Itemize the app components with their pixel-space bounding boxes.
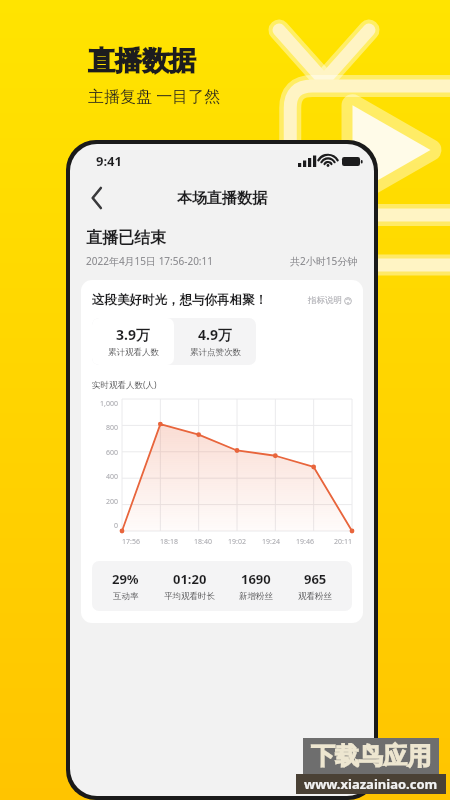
staticText: 9:41 bbox=[96, 152, 122, 170]
staticText: 600 bbox=[105, 448, 118, 458]
staticText: 01:20 bbox=[173, 570, 207, 588]
staticText: 新增粉丝 bbox=[239, 591, 273, 602]
staticText: 19:24 bbox=[258, 537, 284, 547]
button[interactable]: 01:20 bbox=[160, 570, 219, 602]
staticText: 965 bbox=[304, 570, 327, 588]
staticText: 实时观看人数(人) bbox=[92, 379, 157, 391]
staticText: 19:46 bbox=[292, 537, 318, 547]
staticText: 1690 bbox=[241, 570, 271, 588]
staticText: 4.9万 bbox=[198, 325, 232, 344]
staticText: 累计观看人数 bbox=[108, 347, 159, 358]
button[interactable]: 4.9万 bbox=[174, 318, 256, 365]
button[interactable]: 29% bbox=[108, 570, 143, 602]
staticText: 共2小时15分钟 bbox=[290, 254, 358, 268]
staticText: 17:56 bbox=[122, 537, 148, 547]
staticText: 19:02 bbox=[224, 537, 250, 547]
staticText: 平均观看时长 bbox=[164, 591, 215, 602]
button[interactable]: 1690 bbox=[235, 570, 277, 602]
staticText: 2022年4月15日 17:56-20:11 bbox=[86, 254, 213, 268]
button[interactable]: Back bbox=[78, 179, 116, 217]
staticText: 这段美好时光，想与你再相聚！ bbox=[92, 292, 267, 308]
staticText: 本场直播数据 bbox=[177, 189, 267, 208]
staticText: 18:18 bbox=[156, 537, 182, 547]
staticText: 直播数据 bbox=[88, 44, 196, 78]
staticText: 18:40 bbox=[190, 537, 216, 547]
staticText: 200 bbox=[105, 497, 118, 507]
staticText: www.xiazainiao.com bbox=[304, 775, 438, 793]
button[interactable]: 965 bbox=[294, 570, 336, 602]
staticText: 20:11 bbox=[326, 537, 352, 547]
staticText: 800 bbox=[105, 423, 118, 433]
button[interactable]: 指标说明 bbox=[308, 295, 352, 306]
staticText: 下载鸟应用 bbox=[311, 741, 431, 771]
staticText: 互动率 bbox=[113, 591, 139, 602]
staticText: 400 bbox=[105, 472, 118, 482]
staticText: 观看粉丝 bbox=[298, 591, 332, 602]
button[interactable]: 3.9万 bbox=[92, 318, 174, 365]
staticText: 累计点赞次数 bbox=[190, 347, 241, 358]
staticText: 指标说明 bbox=[308, 295, 342, 306]
staticText: 3.9万 bbox=[116, 325, 150, 344]
staticText: 0 bbox=[113, 521, 118, 531]
staticText: 直播已结束 bbox=[86, 228, 166, 248]
staticText: 1,000 bbox=[100, 399, 118, 409]
staticText: 主播复盘 一目了然 bbox=[88, 85, 221, 107]
staticText: 29% bbox=[112, 570, 139, 588]
